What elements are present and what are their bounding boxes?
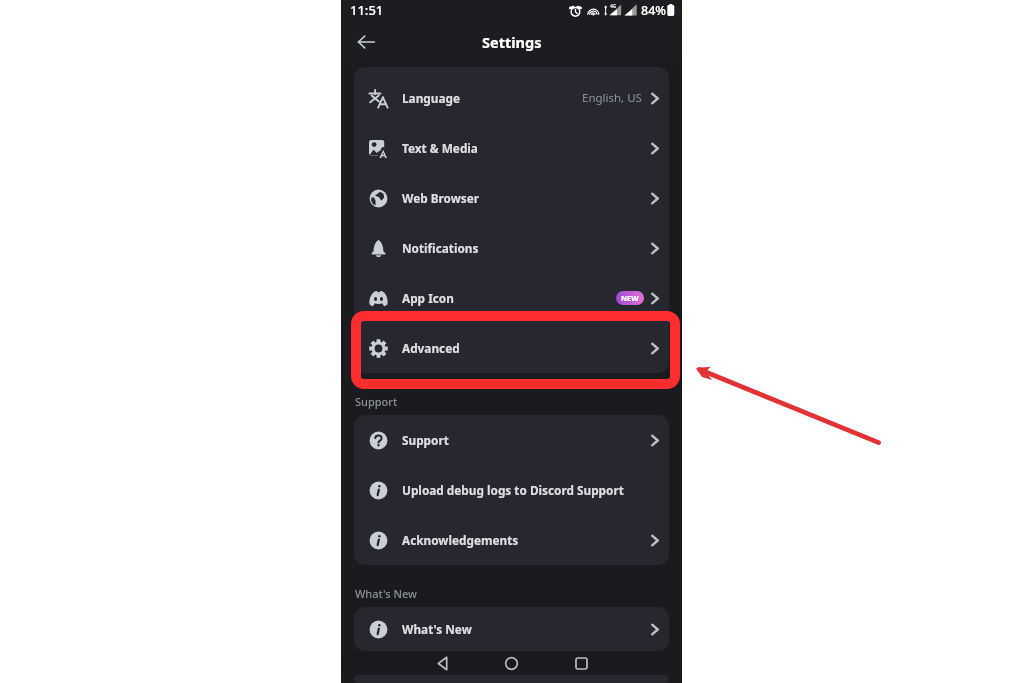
staticText: What's New xyxy=(355,586,417,601)
staticText: Text & Media xyxy=(402,140,478,156)
staticText: English, US xyxy=(582,90,642,106)
staticText: Support xyxy=(355,394,398,409)
button[interactable]: Acknowledgements xyxy=(354,515,669,565)
button[interactable]: Support xyxy=(354,415,669,465)
button[interactable]: Text & Media xyxy=(354,123,669,173)
button[interactable]: Advanced xyxy=(354,323,669,373)
staticText: Notifications xyxy=(402,240,479,256)
button[interactable]: Notifications xyxy=(354,223,669,273)
staticText: Language xyxy=(402,90,461,106)
button[interactable]: What's New xyxy=(354,607,669,651)
button[interactable]: Home xyxy=(500,652,523,675)
staticText: Upload debug logs to Discord Support xyxy=(402,482,624,498)
staticText: Support xyxy=(402,432,449,448)
button[interactable]: Language xyxy=(354,73,669,123)
staticText: What's New xyxy=(402,621,472,637)
staticText: 11:51 xyxy=(350,1,384,19)
staticText: 84% xyxy=(641,2,666,19)
button[interactable]: Back xyxy=(353,29,379,55)
button[interactable]: Upload debug logs to Discord Support xyxy=(354,465,669,515)
staticText: Web Browser xyxy=(402,190,480,206)
staticText: App Icon xyxy=(402,290,454,306)
staticText: Settings xyxy=(482,32,542,52)
button[interactable]: Web Browser xyxy=(354,173,669,223)
button[interactable]: Recent apps xyxy=(570,652,593,675)
button[interactable]: App Icon xyxy=(354,273,669,323)
staticText: Advanced xyxy=(402,340,460,356)
button[interactable]: Back xyxy=(431,652,454,675)
staticText: NEW xyxy=(621,293,639,303)
staticText: 4G xyxy=(610,3,617,10)
staticText: Acknowledgements xyxy=(402,532,519,548)
